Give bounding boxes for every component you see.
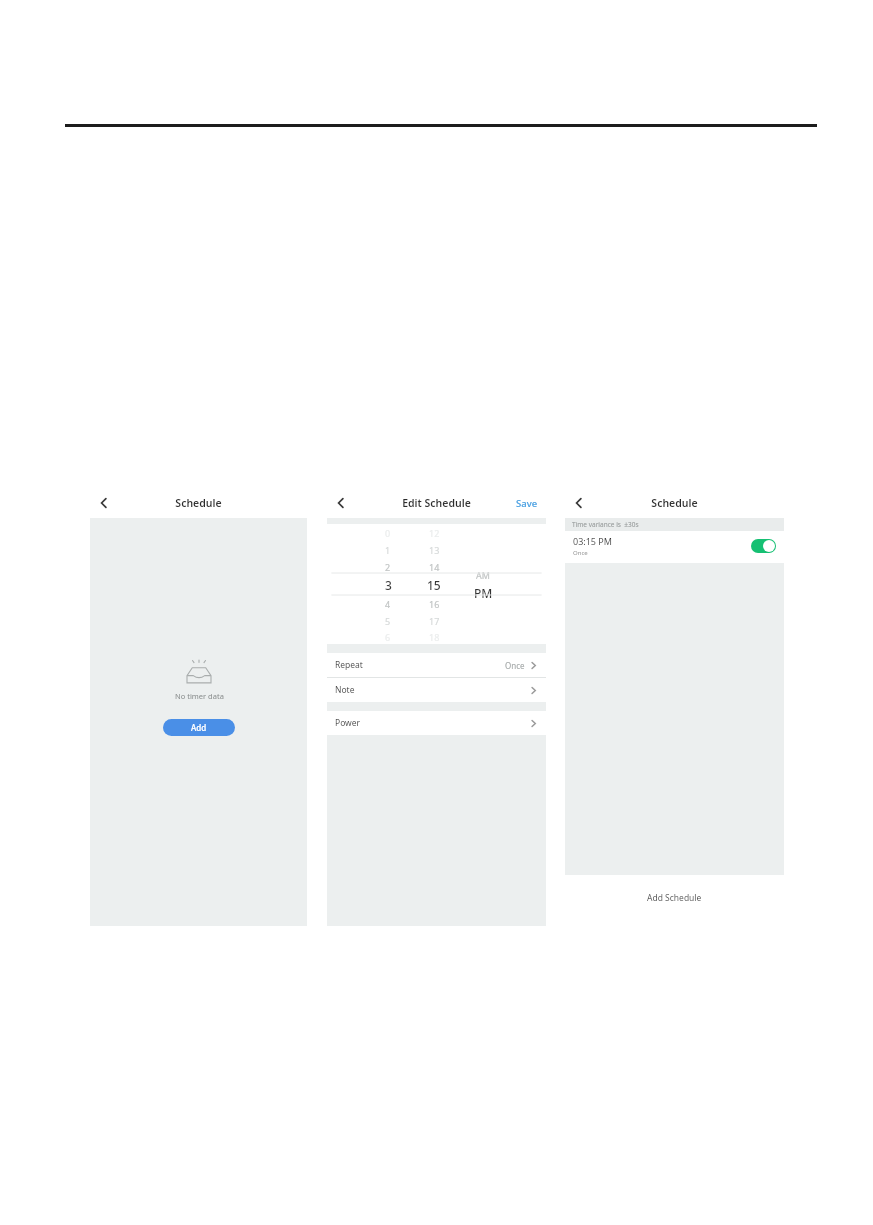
button[interactable]: Back (330, 492, 352, 514)
button[interactable]: Add (163, 719, 235, 736)
staticText: 0 (385, 527, 391, 539)
button[interactable]: 17 (429, 612, 440, 629)
button[interactable]: 3 (385, 575, 392, 595)
button[interactable]: 12 (429, 524, 440, 541)
button[interactable]: 13 (429, 541, 440, 558)
staticText: PM (474, 585, 493, 601)
button[interactable]: Back (93, 492, 115, 514)
button[interactable]: 15 (427, 575, 441, 595)
button[interactable]: 03:15 PM (565, 531, 784, 561)
button[interactable]: Repeat (327, 653, 546, 677)
staticText: AM (476, 569, 490, 581)
staticText: 18 (429, 631, 440, 643)
staticText: Power (335, 717, 361, 729)
button[interactable]: 2 (385, 558, 391, 575)
staticText: 14 (429, 561, 440, 573)
staticText: Add Schedule (647, 892, 702, 904)
staticText: No timer data (175, 691, 224, 701)
staticText: Add (191, 722, 207, 733)
staticText: 1 (385, 544, 391, 556)
button[interactable]: 18 (429, 629, 440, 644)
staticText: Schedule (651, 496, 698, 510)
staticText: 5 (385, 615, 391, 627)
staticText: 16 (429, 598, 440, 610)
button[interactable]: 1 (385, 541, 391, 558)
staticText: Note (335, 684, 355, 696)
staticText: 12 (429, 527, 440, 539)
button[interactable]: 0 (385, 524, 391, 541)
staticText: Repeat (335, 659, 363, 671)
button[interactable]: Note (327, 678, 546, 702)
button[interactable]: 6 (385, 629, 391, 644)
staticText: Schedule (175, 496, 222, 510)
button[interactable]: 16 (429, 595, 440, 612)
button[interactable]: Enabled (751, 539, 776, 553)
button[interactable]: 4 (385, 595, 391, 612)
staticText: 13 (429, 544, 440, 556)
staticText: 15 (427, 577, 441, 593)
button[interactable]: Save (514, 495, 540, 512)
staticText: Save (516, 497, 538, 510)
staticText: 17 (429, 615, 440, 627)
staticText: Once (573, 549, 588, 557)
button[interactable]: 5 (385, 612, 391, 629)
staticText: 3 (385, 577, 392, 593)
staticText: Once (505, 660, 525, 671)
staticText: 6 (385, 631, 391, 643)
button[interactable]: 14 (429, 558, 440, 575)
staticText: 2 (385, 561, 391, 573)
button[interactable]: Add Schedule (565, 875, 784, 933)
staticText: 03:15 PM (573, 535, 612, 547)
button[interactable]: Power (327, 711, 546, 735)
staticText: 4 (385, 598, 391, 610)
staticText: Edit Schedule (402, 496, 471, 510)
staticText: Time variance is ±30s (572, 520, 639, 529)
button[interactable]: Back (568, 492, 590, 514)
